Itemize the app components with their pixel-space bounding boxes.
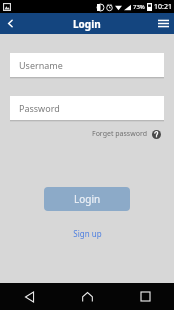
button[interactable]: Menu [153,13,174,34]
button[interactable]: Password [10,96,164,120]
staticText: Forget password [92,129,148,139]
button[interactable]: Username [10,53,164,77]
staticText: Login [73,17,101,31]
button[interactable]: Sign up [65,225,110,242]
staticText: 73% [133,3,145,11]
staticText: Password [19,102,60,114]
button[interactable]: Login [44,187,130,211]
staticText: 10:21 [154,2,172,12]
button[interactable]: Recent apps [116,283,174,310]
staticText: Username [19,59,63,71]
button[interactable]: Forget password [90,127,163,141]
staticText: Login [74,192,101,206]
button[interactable]: Home [58,283,116,310]
staticText: Sign up [73,228,102,239]
button[interactable]: Back [0,13,21,34]
button[interactable]: Back [0,283,58,310]
